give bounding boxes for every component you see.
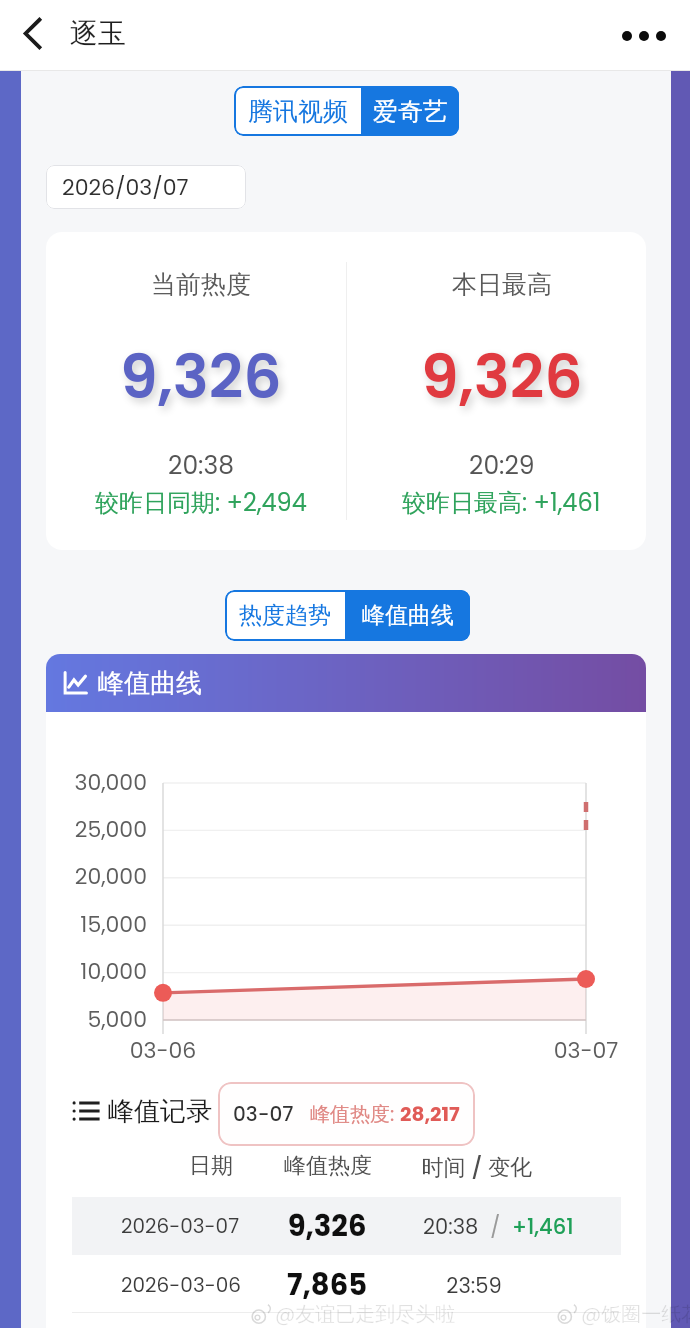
staticText: 峰值曲线 [362, 601, 454, 630]
button[interactable]: 峰值曲线 [345, 590, 470, 641]
staticText: 腾讯视频 [248, 96, 348, 127]
staticText: 本日最高 [452, 269, 552, 300]
staticText: 03-07 [526, 1035, 646, 1066]
staticText: 2026-03-06 [61, 1271, 301, 1299]
staticText: 23:59 [354, 1271, 594, 1300]
staticText: 28,217 [400, 1100, 460, 1128]
staticText: 峰值记录 [108, 1095, 212, 1128]
staticText: 峰值热度: [310, 1100, 400, 1128]
button[interactable]: 2026/03/07 [46, 165, 246, 209]
staticText: 爱奇艺 [373, 96, 448, 127]
staticText: 20,000 [46, 861, 147, 892]
staticText: 当前热度 [151, 269, 251, 300]
staticText: +1,461 [512, 1212, 574, 1241]
staticText: 较昨日同期: +2,494 [95, 486, 307, 520]
staticText: @饭圈一纸花 [581, 1300, 690, 1328]
staticText: 03-06 [103, 1035, 223, 1066]
staticText: 较昨日最高: +1,461 [402, 486, 601, 520]
staticText: 峰值热度 [208, 1152, 448, 1180]
staticText: 20:38 [168, 448, 234, 483]
button[interactable]: More options [616, 8, 672, 64]
staticText: 2026-03-07 [60, 1212, 300, 1240]
staticText: 5,000 [46, 1004, 147, 1035]
button[interactable]: 腾讯视频 [234, 86, 361, 136]
staticText: / [479, 1212, 512, 1241]
staticText: 03-07 [233, 1100, 294, 1128]
staticText: 25,000 [46, 814, 147, 845]
button[interactable]: 爱奇艺 [361, 86, 459, 136]
staticText: 15,000 [46, 909, 147, 940]
staticText: 9,326 [207, 1206, 447, 1247]
staticText: 9,326 [421, 335, 583, 419]
staticText: 7,865 [207, 1265, 447, 1306]
staticText: 20:29 [469, 448, 535, 483]
button[interactable]: 03-07 [218, 1082, 475, 1146]
button[interactable] [72, 1197, 621, 1255]
staticText: 峰值曲线 [98, 667, 202, 700]
staticText: 日期 [91, 1152, 331, 1180]
staticText: @友谊已走到尽头啦 [275, 1300, 456, 1328]
button[interactable]: Back [9, 12, 57, 60]
staticText: 逐玉 [70, 16, 126, 51]
staticText: 10,000 [46, 956, 147, 987]
staticText: 30,000 [46, 767, 147, 798]
staticText: 时间 / 变化 [357, 1152, 597, 1183]
staticText: 9,326 [120, 335, 282, 419]
button[interactable]: 热度趋势 [225, 590, 345, 641]
staticText: 20:38 [423, 1212, 479, 1241]
staticText: 热度趋势 [239, 601, 331, 630]
staticText: 2026/03/07 [62, 172, 189, 203]
